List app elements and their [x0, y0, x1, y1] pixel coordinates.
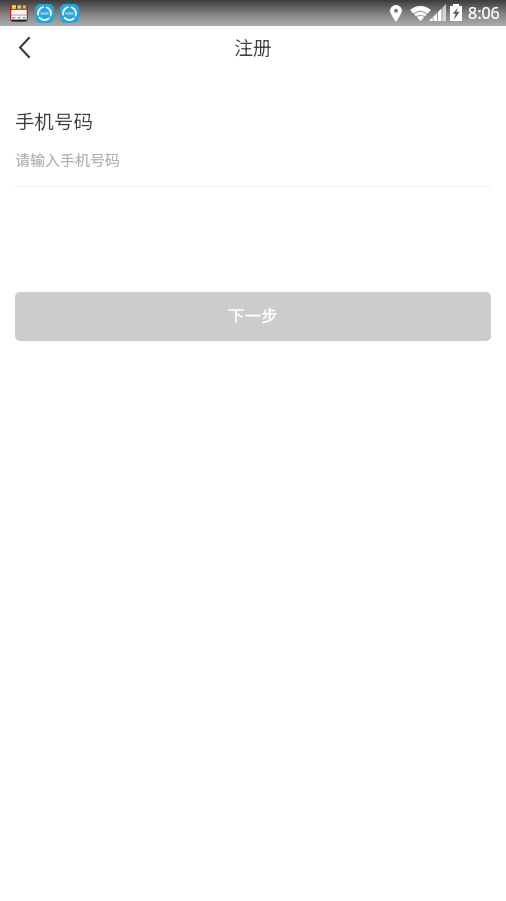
- staticText: 下一步: [228, 303, 278, 327]
- button[interactable]: Back: [0, 26, 46, 68]
- button[interactable]: 下一步: [15, 292, 491, 341]
- button[interactable]: 请输入手机号码: [0, 134, 506, 187]
- staticText: 手机号码: [15, 106, 94, 134]
- staticText: 注册: [234, 33, 273, 61]
- staticText: 8:06: [468, 2, 500, 24]
- staticText: 请输入手机号码: [15, 149, 121, 171]
